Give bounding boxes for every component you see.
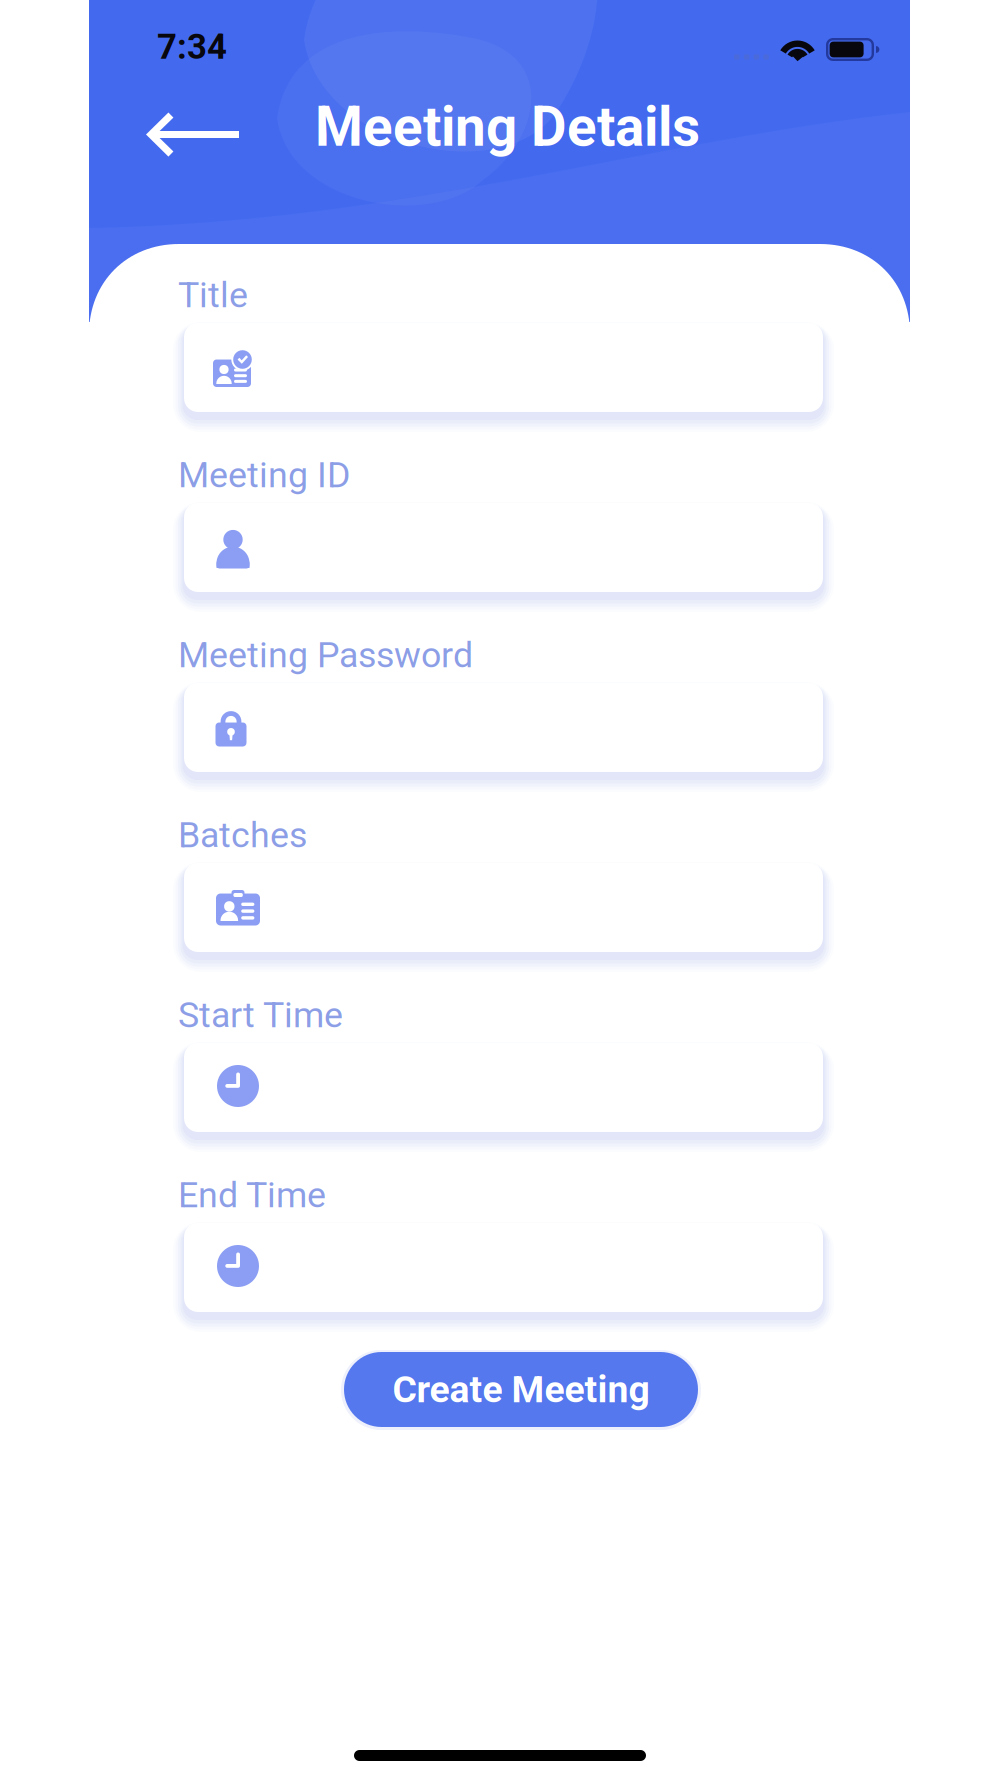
staticText: Start Time xyxy=(178,994,343,1036)
staticText: Title xyxy=(178,274,248,316)
button[interactable]: End Time xyxy=(178,1174,910,1354)
button[interactable]: Batches xyxy=(178,814,910,994)
button[interactable]: Back xyxy=(89,92,296,178)
button[interactable]: Meeting ID xyxy=(178,454,910,634)
button[interactable]: Create Meeting xyxy=(344,1352,698,1427)
staticText: 7:34 xyxy=(157,27,227,67)
staticText: Batches xyxy=(178,814,307,856)
button[interactable]: Title xyxy=(178,274,910,454)
staticText: Meeting ID xyxy=(178,454,350,496)
staticText: Meeting Details xyxy=(315,95,700,159)
staticText: End Time xyxy=(178,1174,326,1216)
staticText: Meeting Password xyxy=(178,634,473,676)
button[interactable]: Meeting Password xyxy=(178,634,910,814)
staticText: Create Meeting xyxy=(392,1368,649,1411)
button[interactable]: Start Time xyxy=(178,994,910,1174)
